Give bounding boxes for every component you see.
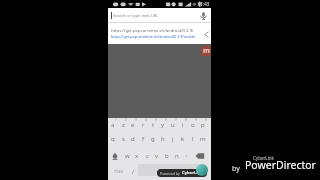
staticText: PowerDirector xyxy=(245,158,316,172)
button[interactable]: 6 xyxy=(158,118,168,132)
button[interactable]: x xyxy=(132,146,142,162)
staticText: l xyxy=(192,135,194,143)
staticText: h xyxy=(161,135,165,143)
staticText: q xyxy=(111,135,115,143)
staticText: v xyxy=(155,152,159,160)
staticText: https://get.popcorntime.sh/android/0.3.9… xyxy=(111,34,196,39)
button[interactable]: m xyxy=(198,132,208,146)
button[interactable]: k xyxy=(178,132,188,146)
staticText: f xyxy=(142,135,145,143)
button[interactable]: s xyxy=(118,132,128,146)
button[interactable]: https://get.popcorntime.sh/android/0.3.9… xyxy=(108,23,211,44)
button[interactable]: / xyxy=(129,162,137,180)
staticText: w xyxy=(125,152,130,160)
button[interactable]: 5 xyxy=(148,118,158,132)
button[interactable]: 3 xyxy=(128,118,138,132)
button[interactable]: Go xyxy=(207,162,211,180)
button[interactable]: d xyxy=(128,132,138,146)
staticText: i xyxy=(182,121,184,129)
button[interactable]: Voice search xyxy=(199,11,208,20)
button[interactable]: 7 xyxy=(168,118,178,132)
staticText: / xyxy=(132,168,135,176)
staticText: n xyxy=(175,152,179,160)
staticText: 01:43 xyxy=(198,1,210,7)
button[interactable]: Search or type web URL xyxy=(108,8,211,22)
staticText: m xyxy=(203,46,210,56)
staticText: CyberLink xyxy=(253,155,275,161)
button[interactable]: n xyxy=(172,146,182,162)
staticText: 1 xyxy=(115,118,117,122)
staticText: p xyxy=(201,121,205,129)
staticText: 9 xyxy=(195,118,197,122)
button[interactable]: ' xyxy=(182,146,192,162)
button[interactable]: w xyxy=(122,146,132,162)
staticText: ?123 xyxy=(114,169,124,175)
button[interactable]: f xyxy=(138,132,148,146)
button[interactable]: Backspace xyxy=(192,146,208,162)
button[interactable]: q xyxy=(108,132,118,146)
staticText: o xyxy=(191,121,195,129)
staticText: 7 xyxy=(175,118,177,122)
button[interactable]: Use this suggestion xyxy=(203,31,210,38)
staticText: x xyxy=(135,152,139,160)
button[interactable]: Space xyxy=(138,164,206,176)
staticText: r xyxy=(142,121,145,129)
staticText: 8 xyxy=(185,118,187,122)
button[interactable]: 1 xyxy=(108,118,118,132)
button[interactable]: ?123 xyxy=(108,162,129,180)
staticText: m xyxy=(200,135,206,143)
staticText: e xyxy=(131,121,135,129)
staticText: j xyxy=(172,135,174,143)
button[interactable]: g xyxy=(148,132,158,146)
staticText: 0 xyxy=(205,118,207,122)
staticText: b xyxy=(165,152,169,160)
staticText: u xyxy=(171,121,175,129)
button[interactable]: Shift xyxy=(108,146,122,162)
staticText: d xyxy=(131,135,135,143)
button[interactable]: c xyxy=(142,146,152,162)
button[interactable]: 9 xyxy=(188,118,198,132)
staticText: z xyxy=(122,121,125,129)
staticText: CyberLink xyxy=(182,170,204,176)
staticText: https://get.popcorntime.sh/android/0.3.9… xyxy=(111,28,194,34)
button[interactable]: j xyxy=(168,132,178,146)
staticText: ' xyxy=(186,153,188,161)
staticText: k xyxy=(181,135,185,143)
staticText: 4 xyxy=(145,118,147,122)
button[interactable]: 4 xyxy=(138,118,148,132)
staticText: a xyxy=(111,121,115,129)
staticText: 2 xyxy=(125,118,127,122)
staticText: c xyxy=(146,152,149,160)
staticText: 5 xyxy=(155,118,157,122)
button[interactable]: v xyxy=(152,146,162,162)
button[interactable]: b xyxy=(162,146,172,162)
button[interactable]: Site icon xyxy=(201,46,211,56)
staticText: Search or type web URL xyxy=(113,13,159,19)
button[interactable]: 8 xyxy=(178,118,188,132)
staticText: g xyxy=(151,135,155,143)
button[interactable]: h xyxy=(158,132,168,146)
staticText: Powered by xyxy=(160,171,180,176)
button[interactable]: l xyxy=(188,132,198,146)
staticText: 6 xyxy=(165,118,167,122)
staticText: t xyxy=(152,121,155,129)
button[interactable]: 2 xyxy=(118,118,128,132)
staticText: y xyxy=(161,121,165,129)
staticText: 3 xyxy=(135,118,137,122)
button[interactable]: 0 xyxy=(198,118,208,132)
staticText: by xyxy=(232,164,240,174)
staticText: s xyxy=(122,135,125,143)
